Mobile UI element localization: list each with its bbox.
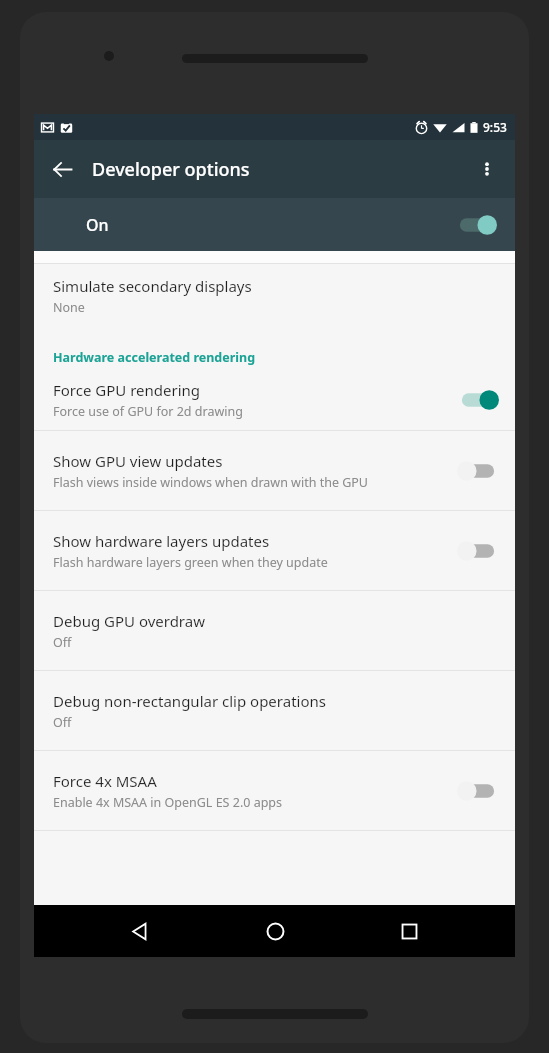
button[interactable]: Home — [247, 905, 303, 957]
button[interactable]: Switch off — [455, 535, 501, 567]
staticText: Force GPU rendering — [53, 380, 201, 400]
staticText: Debug GPU overdraw — [53, 611, 205, 631]
staticText: Show GPU view updates — [53, 451, 223, 471]
staticText: None — [53, 299, 85, 316]
button[interactable]: Simulate secondary displays — [34, 264, 515, 328]
button[interactable]: Show GPU view updates — [34, 431, 515, 510]
staticText: Debug non-rectangular clip operations — [53, 691, 326, 711]
staticText: Off — [53, 634, 72, 651]
button[interactable]: Force 4x MSAA — [34, 751, 515, 830]
staticText: Force 4x MSAA — [53, 771, 157, 791]
staticText: Force use of GPU for 2d drawing — [53, 403, 243, 420]
staticText: Off — [53, 714, 72, 731]
button[interactable]: Show hardware layers updates — [34, 511, 515, 590]
staticText: 9:53 — [483, 119, 507, 135]
button[interactable]: Navigate up — [40, 147, 84, 191]
staticText: Flash views inside windows when drawn wi… — [53, 474, 368, 491]
button[interactable]: Debug GPU overdraw — [34, 591, 515, 670]
button[interactable]: Switch off — [455, 455, 501, 487]
button[interactable]: Switch off — [455, 775, 501, 807]
button[interactable]: Force GPU rendering — [34, 370, 515, 430]
staticText: On — [86, 214, 109, 236]
staticText: Enable 4x MSAA in OpenGL ES 2.0 apps — [53, 794, 283, 811]
button[interactable]: Switch on — [455, 384, 501, 416]
button[interactable]: Recent apps — [381, 905, 437, 957]
staticText: Flash hardware layers green when they up… — [53, 554, 328, 571]
button[interactable]: Back — [112, 905, 168, 957]
staticText: Simulate secondary displays — [53, 276, 252, 296]
button[interactable]: Switch on — [453, 209, 499, 241]
staticText: Developer options — [92, 157, 250, 182]
button[interactable]: On — [34, 198, 515, 251]
staticText: Show hardware layers updates — [53, 531, 270, 551]
button[interactable]: Debug non-rectangular clip operations — [34, 671, 515, 750]
staticText: Hardware accelerated rendering — [53, 349, 256, 366]
button[interactable]: More options — [465, 147, 509, 191]
